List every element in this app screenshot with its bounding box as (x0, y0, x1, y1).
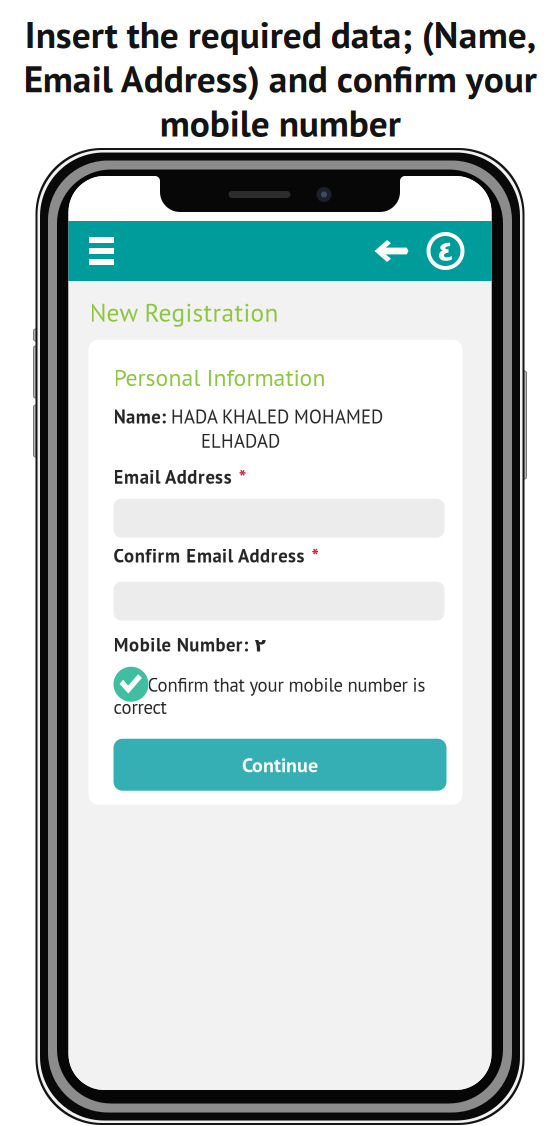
staticText: New Registration (89, 296, 278, 329)
button[interactable]: Menu (68, 221, 134, 281)
button[interactable]: Back (366, 221, 416, 281)
staticText: Name: (113, 404, 166, 429)
staticText: correct (113, 695, 166, 719)
staticText: HADA KHALED MOHAMED ELHADAD (171, 404, 383, 453)
staticText: Mobile Number: ٢ (113, 633, 265, 657)
staticText: Confirm that your mobile number is (147, 673, 425, 697)
button[interactable]: Continue (113, 739, 446, 791)
staticText: Continue (242, 752, 318, 778)
staticText: Personal Information (113, 362, 325, 392)
button[interactable]: Currency (416, 221, 491, 281)
staticText: ٤ (437, 235, 454, 267)
staticText: Email Address (113, 465, 232, 489)
staticText: Confirm Email Address (113, 543, 304, 568)
staticText: * (311, 543, 319, 569)
staticText: * (239, 464, 247, 490)
staticText: Insert the required data; (Name, Email A… (23, 10, 536, 147)
